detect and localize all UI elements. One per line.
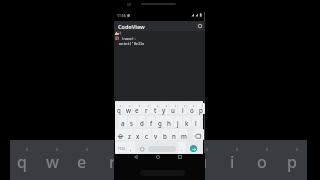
- button[interactable]: [193, 129, 204, 140]
- staticText: 11:56: [117, 13, 126, 18]
- button[interactable]: [178, 155, 182, 159]
- button[interactable]: [137, 116, 145, 127]
- staticText: t: [154, 106, 157, 114]
- button[interactable]: [128, 116, 136, 127]
- staticText: i: [230, 151, 235, 173]
- button[interactable]: [114, 21, 205, 31]
- staticText: v: [154, 132, 158, 140]
- button[interactable]: [142, 103, 150, 114]
- staticText: if (name):: [115, 36, 136, 40]
- staticText: q: [17, 151, 27, 173]
- button[interactable]: [143, 129, 151, 140]
- staticText: j: [177, 119, 179, 127]
- staticText: e: [77, 151, 87, 173]
- staticText: CodeView: [118, 23, 145, 30]
- staticText: r: [145, 106, 148, 114]
- button[interactable]: [169, 103, 177, 114]
- staticText: i: [182, 106, 184, 114]
- staticText: def main():: [115, 31, 137, 35]
- staticText: u: [171, 106, 175, 114]
- button[interactable]: [125, 129, 133, 140]
- staticText: x: [136, 132, 140, 140]
- button[interactable]: [170, 129, 178, 140]
- staticText: t: [139, 151, 146, 173]
- staticText: s: [130, 119, 134, 127]
- button[interactable]: [115, 142, 126, 153]
- button[interactable]: [115, 103, 123, 114]
- staticText: g: [158, 119, 162, 127]
- staticText: h: [167, 119, 171, 127]
- button[interactable]: [151, 103, 159, 114]
- staticText: def: [115, 31, 121, 35]
- staticText: l: [195, 119, 197, 127]
- staticText: w: [46, 151, 59, 173]
- button[interactable]: [192, 116, 200, 127]
- button[interactable]: [147, 116, 155, 127]
- button[interactable]: [179, 129, 187, 140]
- staticText: y: [162, 106, 166, 114]
- button[interactable]: [119, 116, 127, 127]
- button[interactable]: [160, 103, 168, 114]
- button[interactable]: [115, 129, 126, 140]
- staticText: z: [128, 132, 131, 140]
- button[interactable]: [127, 142, 135, 153]
- button[interactable]: [198, 24, 202, 28]
- staticText: u: [197, 151, 208, 173]
- button[interactable]: [124, 103, 132, 114]
- staticText: y: [168, 151, 177, 173]
- staticText: .: [181, 146, 183, 153]
- button[interactable]: [134, 129, 142, 140]
- staticText: w: [126, 106, 131, 114]
- button[interactable]: [178, 142, 186, 153]
- staticText: r: [109, 151, 116, 173]
- button[interactable]: [156, 155, 160, 159]
- button[interactable]: [152, 129, 160, 140]
- staticText: b: [163, 132, 167, 140]
- button[interactable]: [133, 103, 141, 114]
- button[interactable]: [190, 145, 197, 152]
- staticText: o: [190, 106, 194, 114]
- button[interactable]: [183, 116, 191, 127]
- staticText: ?123: [118, 147, 125, 151]
- button[interactable]: [161, 129, 169, 140]
- button[interactable]: [174, 116, 182, 127]
- button[interactable]: [165, 116, 173, 127]
- button[interactable]: [188, 103, 196, 114]
- staticText: c: [145, 132, 149, 140]
- staticText: a: [121, 119, 125, 127]
- button[interactable]: [156, 116, 164, 127]
- staticText: o: [257, 151, 267, 173]
- button[interactable]: [140, 147, 145, 152]
- staticText: f: [150, 119, 153, 127]
- staticText: e: [135, 106, 139, 114]
- staticText: n: [172, 132, 176, 140]
- button[interactable]: [197, 103, 205, 114]
- staticText: p: [199, 106, 203, 114]
- staticText: m: [181, 132, 187, 140]
- staticText: d: [140, 119, 144, 127]
- button[interactable]: [134, 155, 138, 159]
- staticText: ,: [130, 146, 132, 153]
- button[interactable]: [178, 103, 186, 114]
- staticText: q: [117, 106, 121, 114]
- staticText: k: [185, 119, 189, 127]
- staticText: p: [287, 151, 297, 173]
- staticText: print("Hello"): [119, 41, 145, 45]
